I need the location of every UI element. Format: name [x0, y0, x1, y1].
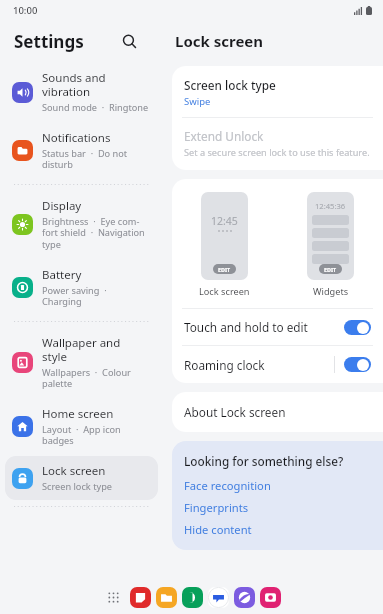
staticText: Settings: [14, 30, 84, 53]
button[interactable]: Fingerprints: [184, 500, 249, 515]
staticText: Roaming clock: [184, 357, 334, 373]
staticText: About Lock screen: [184, 404, 286, 420]
button[interactable]: 12:45:36: [307, 192, 354, 280]
staticText: Set a secure screen lock to use this fea…: [184, 146, 370, 159]
staticText: Wallpaper and style: [42, 335, 121, 365]
staticText: Display: [42, 198, 82, 214]
button[interactable]: Display: [5, 191, 158, 258]
staticText: Screen lock type: [42, 480, 112, 493]
button[interactable]: Phone: [182, 587, 203, 608]
button[interactable]: Notes: [130, 587, 151, 608]
staticText: Home screen: [42, 406, 114, 422]
staticText: EDIT: [218, 266, 231, 273]
button[interactable]: Screen lock type: [172, 66, 383, 117]
staticText: Swipe: [184, 95, 211, 108]
button[interactable]: Camera: [260, 587, 281, 608]
staticText: Battery: [42, 267, 82, 283]
staticText: Lock screen: [175, 31, 264, 51]
staticText: Notifications: [42, 130, 111, 146]
button[interactable]: Lock screen: [5, 456, 158, 500]
staticText: Looking for something else?: [184, 453, 344, 469]
button[interactable]: Face recognition: [184, 478, 271, 493]
button[interactable]: All apps: [102, 586, 124, 608]
staticText: Wallpapers · Colour palette: [42, 366, 131, 390]
staticText: Sound mode · Ringtone: [42, 101, 149, 114]
staticText: Layout · App icon badges: [42, 423, 121, 447]
button[interactable]: Home screen: [5, 399, 158, 454]
staticText: 10:00: [13, 4, 38, 17]
staticText: Touch and hold to edit: [184, 319, 344, 335]
button[interactable]: EDIT: [319, 264, 342, 274]
button[interactable]: Files: [156, 587, 177, 608]
staticText: Status bar · Do not disturb: [42, 147, 128, 171]
button[interactable]: EDIT: [213, 264, 236, 274]
button[interactable]: About Lock screen: [172, 392, 383, 432]
button[interactable]: Search: [114, 26, 144, 56]
staticText: Fingerprints: [184, 500, 249, 515]
button[interactable]: Roaming clock: [172, 346, 383, 383]
staticText: Face recognition: [184, 478, 271, 493]
staticText: Screen lock type: [184, 77, 276, 93]
staticText: Brightness · Eye com- fort shield · Navi…: [42, 215, 145, 251]
staticText: Sounds and vibration: [42, 70, 106, 100]
staticText: Widgets: [313, 285, 349, 298]
button[interactable]: Touch and hold to edit: [172, 309, 383, 345]
staticText: Power saving · Charging: [42, 284, 107, 308]
button[interactable]: Internet: [234, 587, 255, 608]
button[interactable]: Battery: [5, 260, 158, 315]
button[interactable]: Sounds and vibration: [5, 63, 158, 121]
button[interactable]: 12:45: [201, 192, 248, 280]
staticText: EDIT: [324, 266, 337, 273]
staticText: 12:45:36: [315, 201, 346, 211]
button[interactable]: Messages: [208, 587, 229, 608]
staticText: Lock screen: [199, 285, 250, 298]
staticText: Hide content: [184, 522, 252, 537]
button[interactable]: Wallpaper and style: [5, 328, 158, 397]
staticText: 12:45: [211, 214, 238, 228]
staticText: Lock screen: [42, 463, 106, 479]
button[interactable]: Notifications: [5, 123, 158, 178]
staticText: Extend Unlock: [184, 128, 264, 144]
button[interactable]: Hide content: [184, 522, 252, 537]
